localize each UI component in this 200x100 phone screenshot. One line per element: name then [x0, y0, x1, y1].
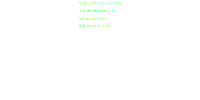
staticText: Get answer just	[78, 23, 109, 28]
staticText: before Quest is visible	[78, 0, 121, 6]
staticText: Get an answer	[78, 15, 106, 21]
staticText: Get an answer just	[78, 8, 115, 13]
